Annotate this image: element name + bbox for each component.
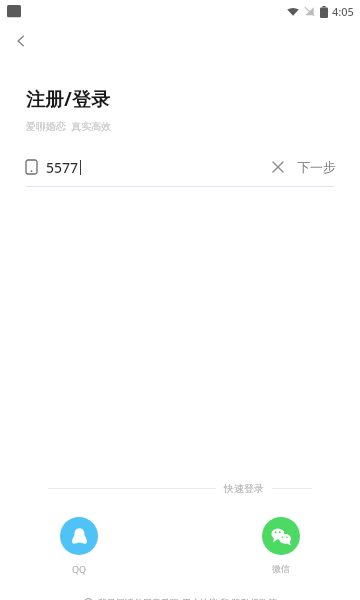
button[interactable]: 微信 xyxy=(258,513,304,578)
staticText: 用户协议 xyxy=(182,597,218,600)
button[interactable]: Back xyxy=(4,24,38,58)
staticText: 5577 xyxy=(46,158,79,177)
staticText: 下一步 xyxy=(297,159,336,175)
staticText: 微信 xyxy=(272,563,290,574)
staticText: 注册/登录 xyxy=(26,86,110,112)
button[interactable]: QQ xyxy=(56,513,102,579)
button[interactable]: 我已阅读并同意爱聊 xyxy=(78,593,283,600)
staticText: 和 xyxy=(218,596,232,600)
staticText: 我已阅读并同意爱聊 xyxy=(98,596,182,600)
button[interactable]: Clear xyxy=(267,156,289,178)
button[interactable]: 下一步 xyxy=(295,155,338,179)
staticText: 爱聊婚恋 真实高效 xyxy=(26,119,112,133)
staticText: 快速登录 xyxy=(224,482,264,495)
staticText: 4:05 xyxy=(332,4,354,19)
staticText: QQ xyxy=(72,563,87,575)
staticText: 隐私权政策 xyxy=(232,597,277,600)
